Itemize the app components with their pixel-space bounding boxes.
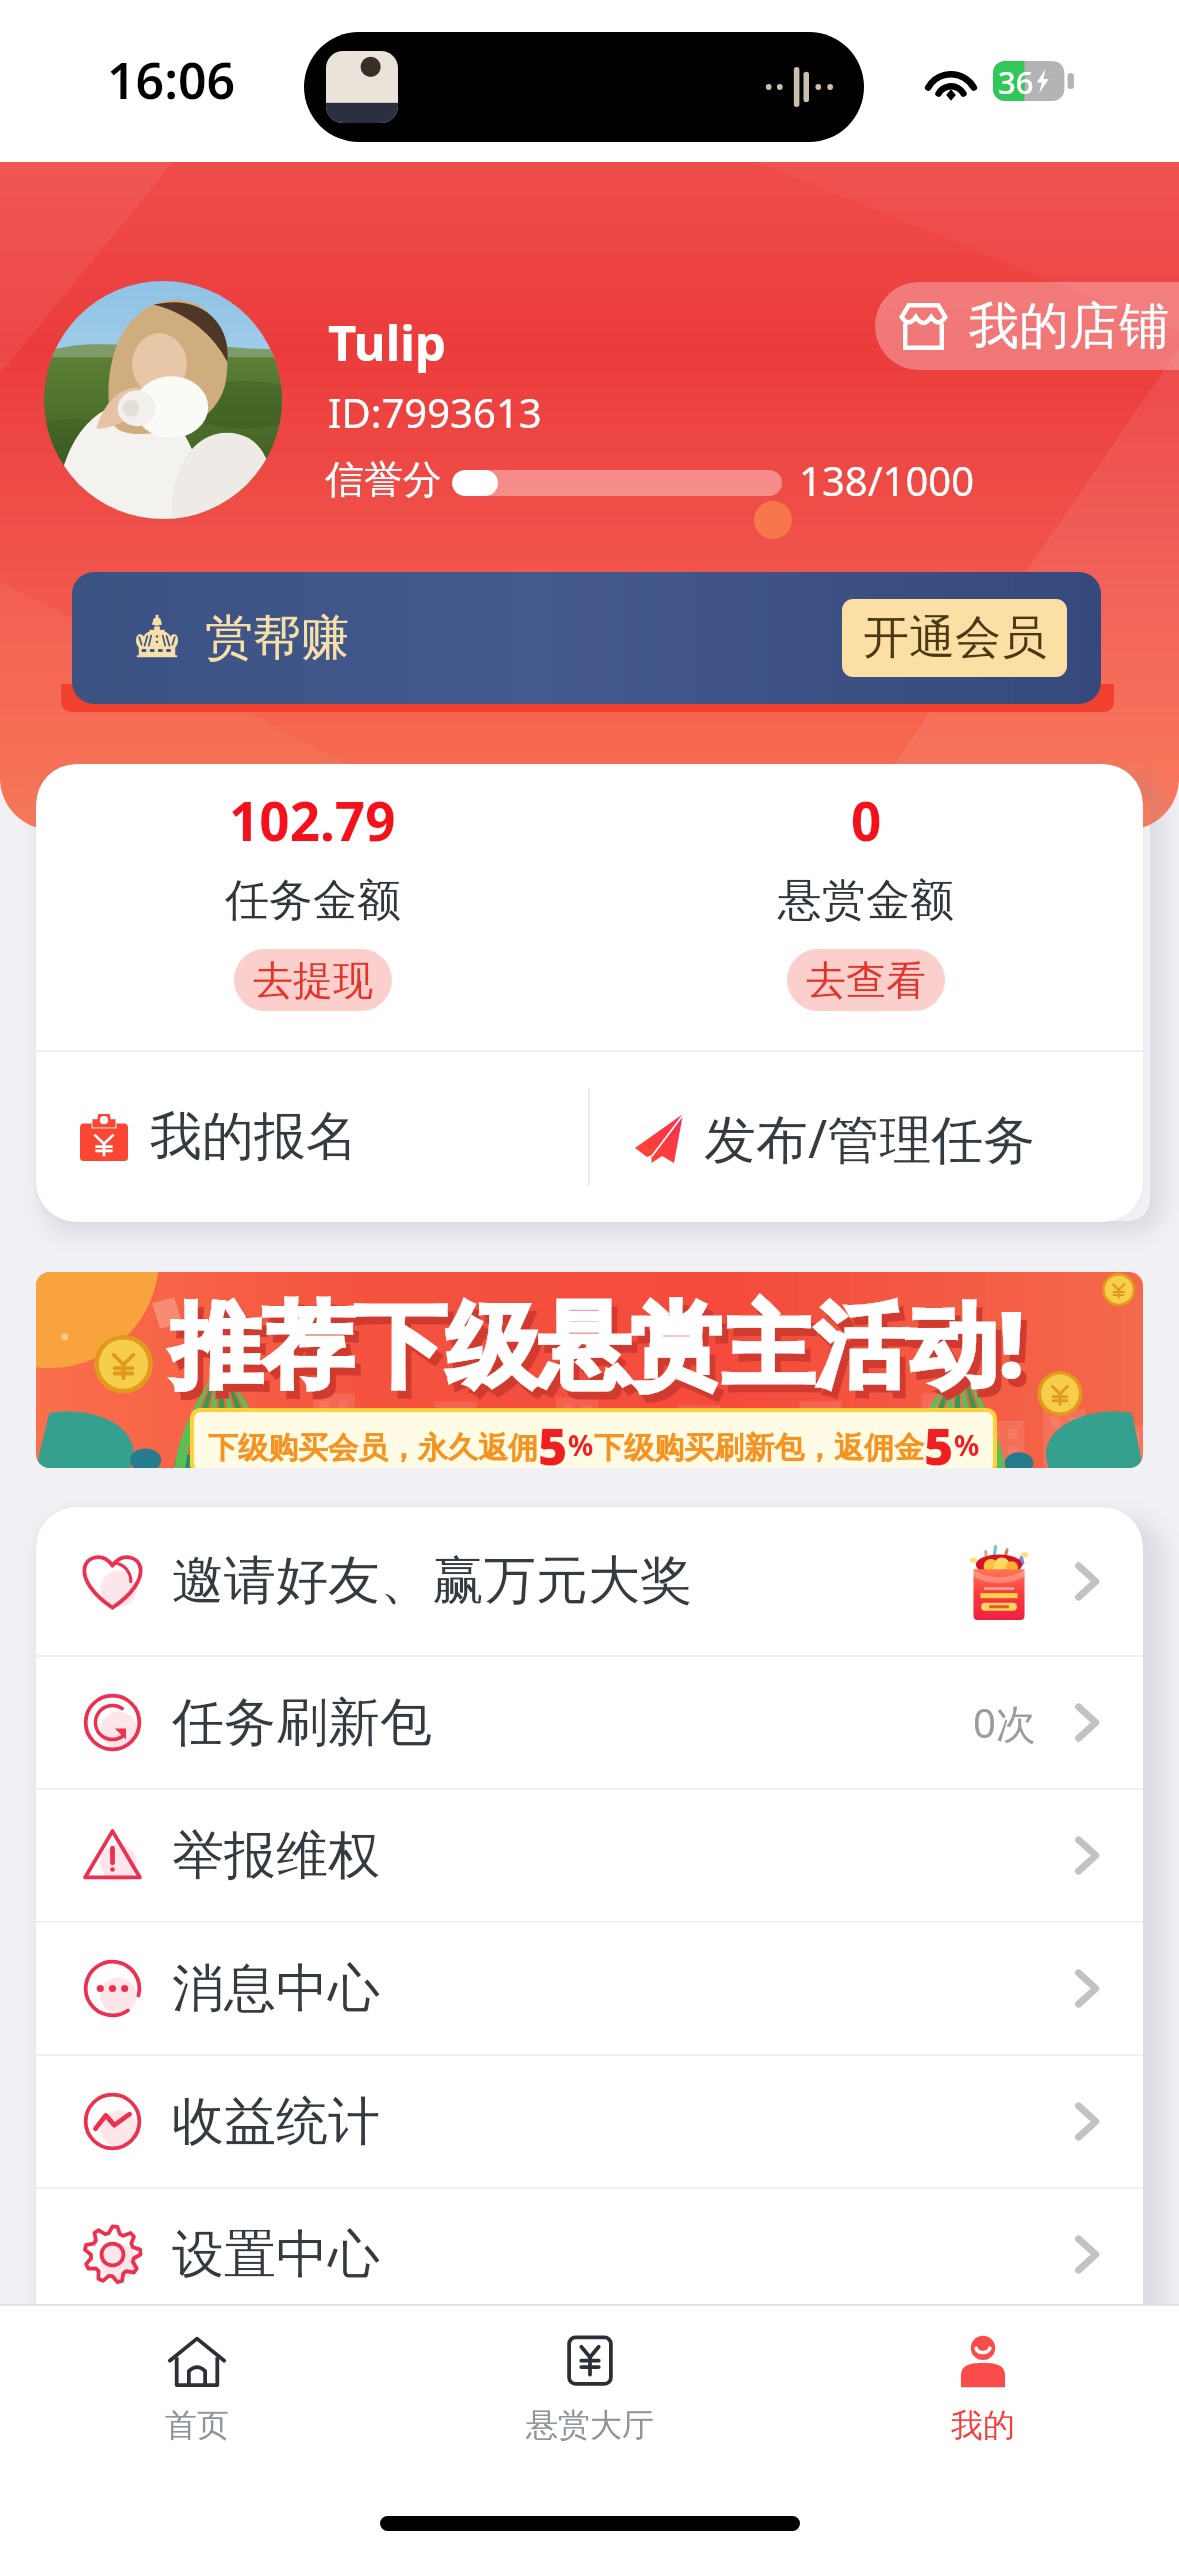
staticText: 下级购买会员，永久返佣 [208,1429,538,1467]
button[interactable]: 去查看 [787,949,945,1011]
staticText: 任务金额 [225,873,401,928]
staticText: 悬赏金额 [778,873,954,928]
button[interactable]: 我的报名 [36,1052,588,1222]
staticText: 我的报名 [150,1104,358,1170]
button[interactable]: 悬赏大厅 [393,2306,786,2466]
staticText: Tulip [328,309,446,376]
staticText: 我的 [951,2405,1015,2445]
staticText: 16:06 [107,46,236,114]
button[interactable]: Profile photo [44,281,282,519]
staticText: 邀请好友、赢万元大奖 [172,1548,692,1614]
staticText: 推荐下级悬赏主活动! [176,1288,1031,1414]
button[interactable]: 举报维权 [36,1790,1143,1921]
staticText: ID:7993613 [328,385,542,439]
staticText: 悬赏大厅 [526,2405,654,2445]
staticText: 消息中心 [172,1956,380,2022]
staticText: 5 [924,1412,954,1468]
staticText: 36 [998,61,1034,101]
staticText: 开通会员 [863,609,1047,667]
button[interactable]: 任务刷新包 [36,1657,1143,1788]
staticText: 138/1000 [799,453,975,507]
button[interactable]: 邀请好友、赢万元大奖 [36,1507,1143,1655]
staticText: % [568,1426,594,1464]
staticText: 去查看 [806,955,926,1005]
staticText: 设置中心 [172,2222,380,2288]
staticText: 推荐下级悬赏主活动! [170,1280,1025,1406]
staticText: 收益统计 [172,2089,380,2155]
staticText: 首页 [165,2405,229,2445]
button[interactable]: Referral campaign banner [36,1272,1143,1468]
button[interactable]: 去提现 [234,949,392,1011]
staticText: 5 [538,1412,568,1468]
button[interactable]: 我的 [786,2306,1179,2466]
staticText: 102.79 [229,784,396,856]
staticText: 信誉分 [325,455,442,504]
staticText: 0次 [973,1695,1036,1750]
staticText: 赏帮赚 [205,608,349,668]
button[interactable]: 首页 [0,2306,393,2466]
staticText: 0 [851,784,882,856]
staticText: 我的店铺 [969,295,1169,358]
button[interactable]: 开通会员 [842,599,1067,677]
button[interactable]: 我的店铺 [875,282,1179,370]
staticText: 去提现 [253,955,373,1005]
button[interactable]: 消息中心 [36,1923,1143,2054]
button[interactable]: 设置中心 [36,2189,1143,2320]
button[interactable]: 收益统计 [36,2056,1143,2187]
button[interactable]: 赏帮赚 [72,572,1101,704]
staticText: 发布/管理任务 [704,1102,1036,1173]
button[interactable]: 发布/管理任务 [590,1052,1143,1222]
staticText: 举报维权 [172,1823,380,1889]
staticText: 下级购买刷新包，返佣金 [594,1429,924,1467]
staticText: 任务刷新包 [172,1690,432,1756]
staticText: % [954,1426,979,1464]
